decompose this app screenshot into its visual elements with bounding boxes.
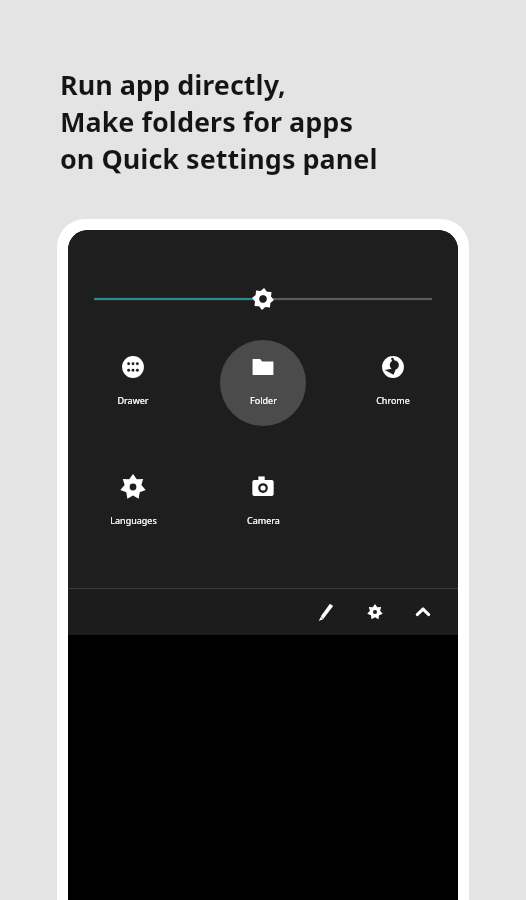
button[interactable]: Drawer: [68, 338, 198, 406]
button[interactable]: Languages: [68, 458, 198, 526]
staticText: Run app directly,: [60, 66, 286, 103]
staticText: Chrome: [376, 394, 410, 406]
staticText: Languages: [110, 514, 157, 526]
button[interactable]: Collapse: [406, 595, 440, 629]
button[interactable]: Folder: [198, 338, 328, 424]
staticText: Make folders for apps: [60, 103, 353, 140]
button[interactable]: [68, 282, 458, 316]
staticText: Camera: [247, 514, 280, 526]
button[interactable]: Settings: [358, 595, 392, 629]
staticText: on Quick settings panel: [60, 140, 378, 177]
staticText: Drawer: [117, 394, 149, 406]
button[interactable]: Edit: [310, 595, 344, 629]
button[interactable]: Chrome: [328, 338, 458, 406]
button[interactable]: Camera: [198, 458, 328, 526]
staticText: Folder: [250, 394, 277, 406]
